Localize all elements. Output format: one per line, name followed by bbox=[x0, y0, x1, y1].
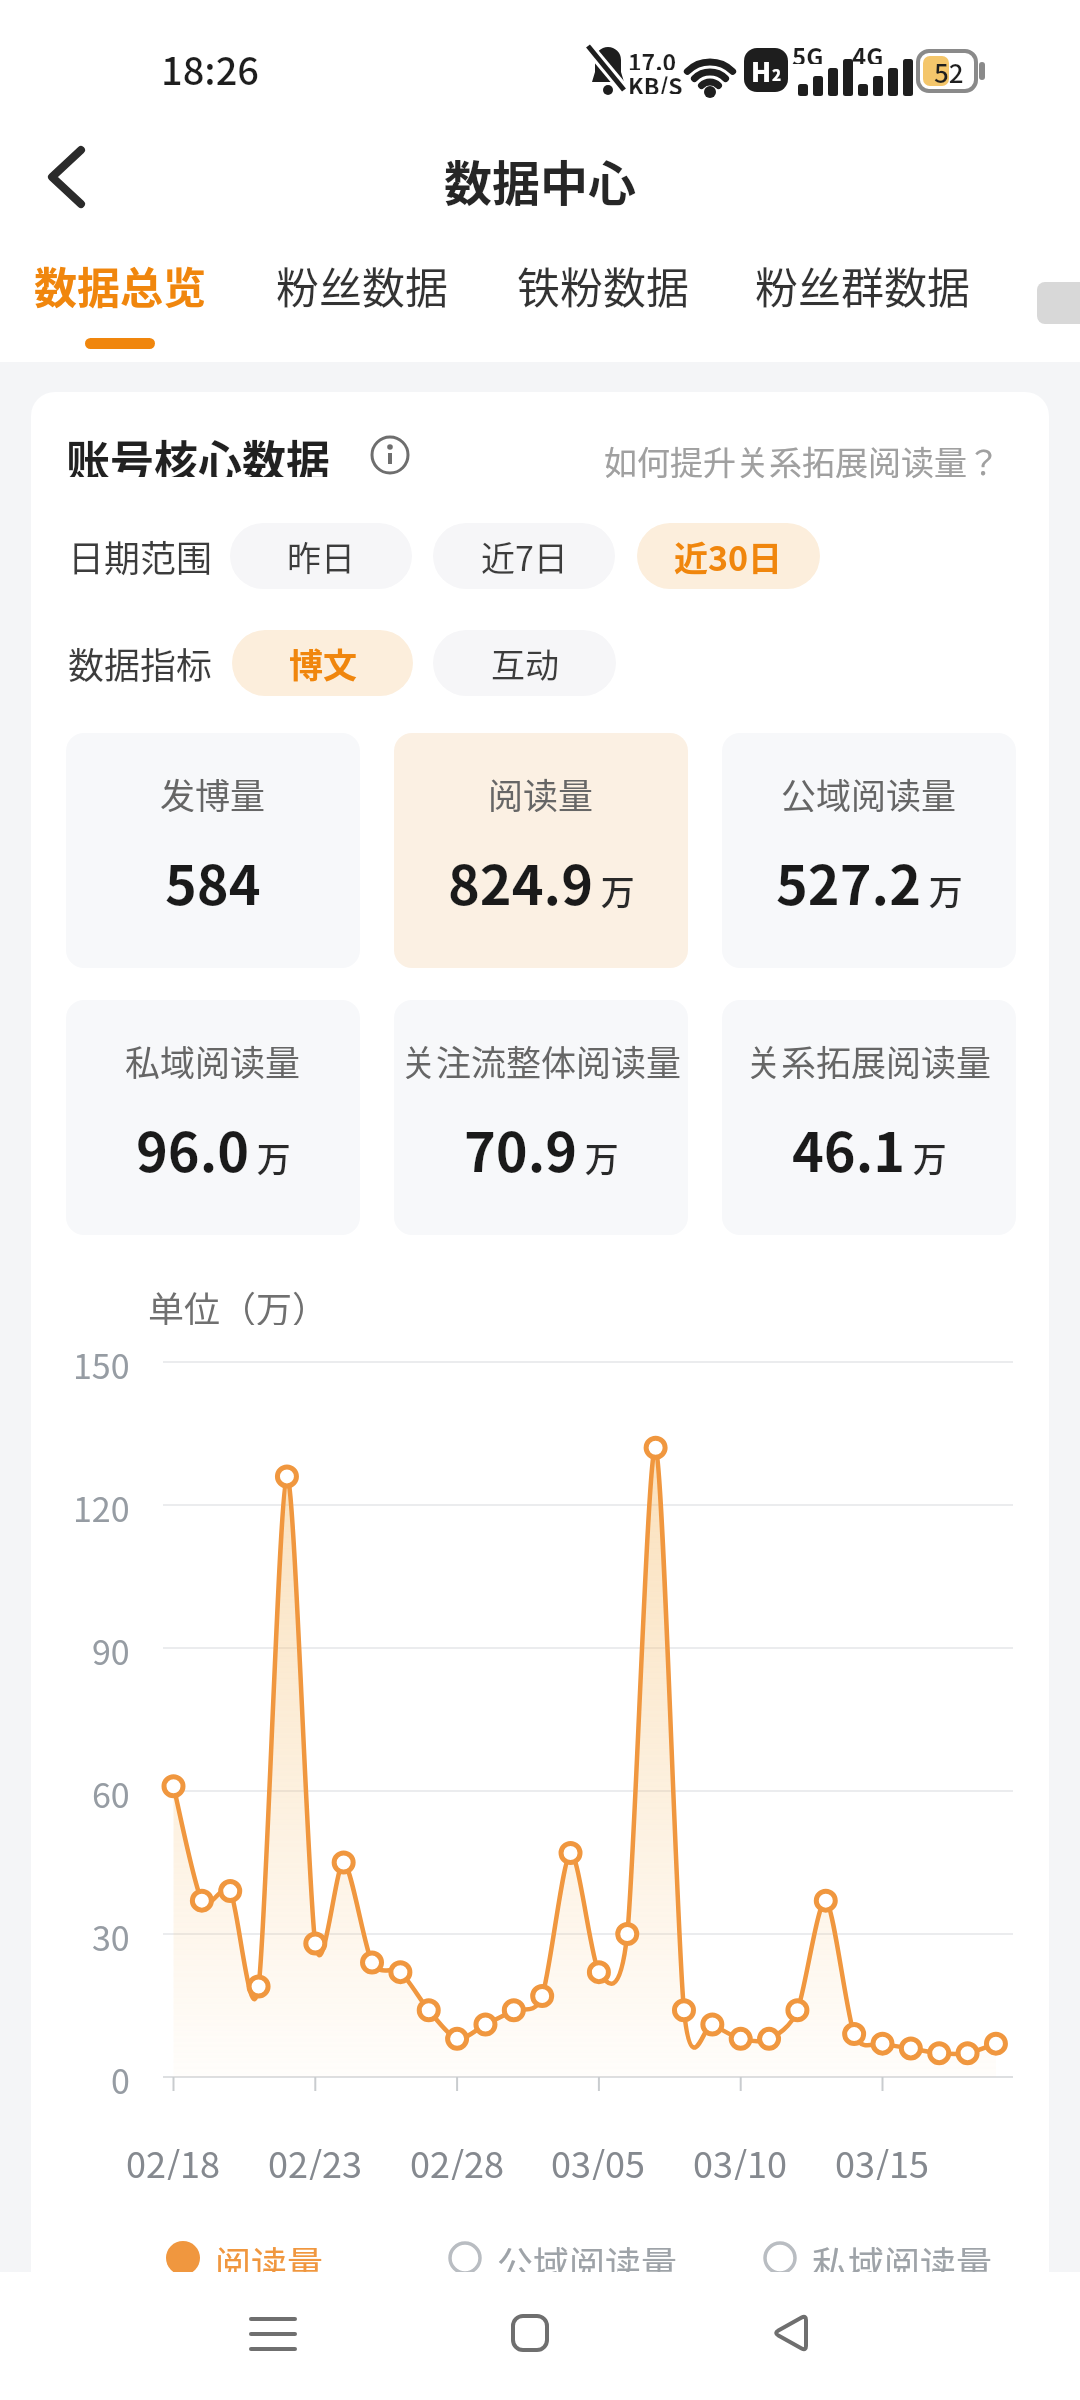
staticText: 03/15 bbox=[835, 2136, 930, 2180]
staticText: 阅读量 bbox=[488, 768, 594, 812]
staticText: 粉丝数据 bbox=[276, 254, 448, 316]
staticText: 近30日 bbox=[674, 532, 783, 581]
button[interactable]: 互动 bbox=[433, 630, 616, 696]
staticText: 2 bbox=[772, 64, 782, 86]
staticText: 60 bbox=[92, 1769, 130, 1813]
button[interactable]: 博文 bbox=[232, 630, 413, 696]
staticText: 90 bbox=[92, 1626, 130, 1670]
staticText: 公域阅读量 bbox=[781, 768, 957, 812]
staticText: 5G bbox=[792, 38, 824, 64]
staticText: 02/23 bbox=[268, 2136, 363, 2180]
staticText: 阅读量 bbox=[215, 2236, 324, 2280]
staticText: 527.2 万 bbox=[776, 842, 963, 920]
staticText: 私域阅读量 bbox=[812, 2236, 993, 2280]
staticText: 4G bbox=[852, 38, 884, 64]
staticText: 账号核心数据 bbox=[66, 427, 330, 477]
button[interactable]: 粉丝群数据 bbox=[748, 252, 976, 318]
button[interactable]: 阅读量 bbox=[394, 733, 688, 968]
button[interactable]: 近30日 bbox=[637, 523, 820, 589]
button[interactable]: 近7日 bbox=[433, 523, 615, 589]
button[interactable]: 公域阅读量 bbox=[722, 733, 1016, 968]
staticText: 03/10 bbox=[693, 2136, 788, 2180]
staticText: H bbox=[751, 52, 772, 88]
staticText: 584 bbox=[165, 842, 261, 920]
staticText: 0 bbox=[111, 2055, 130, 2099]
button[interactable]: 关系拓展阅读量 bbox=[722, 1000, 1016, 1235]
staticText: 单位（万） bbox=[148, 1281, 329, 1325]
staticText: 52 bbox=[934, 53, 964, 89]
staticText: 数据指标 bbox=[68, 637, 213, 689]
button[interactable] bbox=[511, 2314, 549, 2352]
staticText: 发博量 bbox=[160, 768, 266, 812]
staticText: 18:26 bbox=[161, 41, 259, 96]
button[interactable]: 关注流整体阅读量 bbox=[394, 1000, 688, 1235]
staticText: 公域阅读量 bbox=[497, 2236, 678, 2280]
staticText: 96.0 万 bbox=[136, 1109, 291, 1187]
staticText: 互动 bbox=[491, 639, 559, 688]
staticText: 如何提升关系拓展阅读量？ bbox=[604, 437, 1000, 479]
staticText: 150 bbox=[73, 1340, 130, 1384]
button[interactable] bbox=[45, 147, 89, 207]
staticText: 02/28 bbox=[410, 2136, 505, 2180]
staticText: 铁粉数据 bbox=[517, 254, 689, 316]
staticText: 昨日 bbox=[287, 532, 355, 581]
button[interactable]: 昨日 bbox=[230, 523, 412, 589]
button[interactable] bbox=[251, 2315, 295, 2355]
staticText: 数据中心 bbox=[444, 145, 637, 210]
staticText: 03/05 bbox=[551, 2136, 646, 2180]
button[interactable]: 如何提升关系拓展阅读量？ bbox=[574, 437, 1000, 479]
staticText: 70.9 万 bbox=[464, 1109, 619, 1187]
staticText: 46.1 万 bbox=[792, 1109, 947, 1187]
staticText: 02/18 bbox=[126, 2136, 221, 2180]
staticText: 824.9 万 bbox=[448, 842, 635, 920]
staticText: 日期范围 bbox=[68, 530, 213, 582]
staticText: KB/S bbox=[628, 68, 683, 94]
button[interactable] bbox=[770, 2313, 810, 2353]
button[interactable]: 粉丝数据 bbox=[275, 252, 449, 318]
staticText: 粉丝群数据 bbox=[755, 254, 970, 316]
staticText: 私域阅读量 bbox=[125, 1035, 301, 1079]
staticText: 关系拓展阅读量 bbox=[746, 1035, 992, 1079]
button[interactable]: 发博量 bbox=[66, 733, 360, 968]
button[interactable]: 数据总览 bbox=[33, 252, 207, 318]
staticText: 30 bbox=[92, 1912, 130, 1956]
button[interactable]: 铁粉数据 bbox=[516, 252, 690, 318]
staticText: 博文 bbox=[289, 639, 357, 688]
staticText: 关注流整体阅读量 bbox=[401, 1035, 682, 1079]
staticText: 120 bbox=[73, 1483, 130, 1527]
button[interactable]: 私域阅读量 bbox=[66, 1000, 360, 1235]
staticText: 近7日 bbox=[481, 532, 568, 581]
staticText: 17.0 bbox=[628, 44, 677, 70]
staticText: 数据总览 bbox=[34, 254, 206, 316]
